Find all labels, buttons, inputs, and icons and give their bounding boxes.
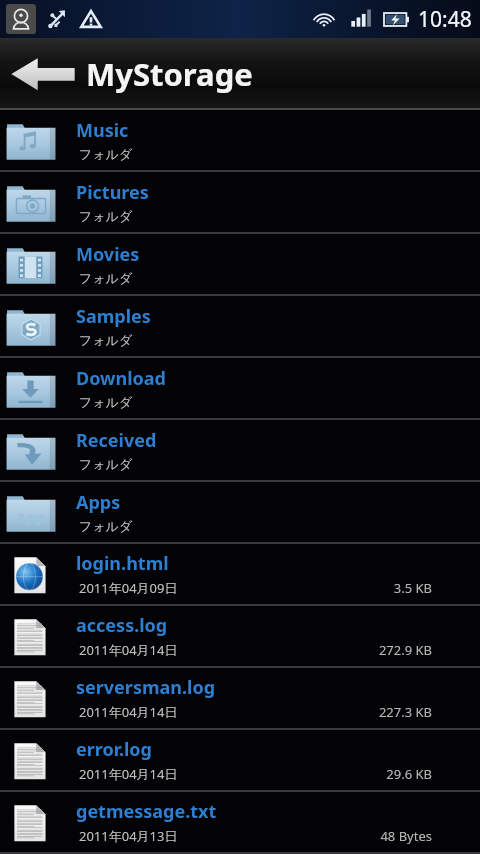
staticText: 2011年04月14日 (79, 641, 178, 659)
staticText: App (16, 507, 46, 527)
staticText: error.log (76, 737, 152, 762)
staticText: フォルダ (79, 270, 133, 286)
staticText: 10:48 (418, 5, 472, 34)
staticText: Download (76, 366, 166, 391)
button[interactable]: Music (0, 110, 480, 172)
button[interactable]: getmessage.txt (0, 792, 480, 854)
button[interactable]: error.log (0, 730, 480, 792)
staticText: Movies (76, 242, 140, 267)
staticText: Music (76, 118, 129, 143)
button[interactable]: Received (0, 420, 480, 482)
button[interactable]: Samples (0, 296, 480, 358)
button[interactable]: Movies (0, 234, 480, 296)
staticText: フォルダ (79, 332, 133, 348)
staticText: フォルダ (79, 394, 133, 410)
button[interactable]: serversman.log (0, 668, 480, 730)
button[interactable]: login.html (0, 544, 480, 606)
button[interactable]: Pictures (0, 172, 480, 234)
staticText: MyStorage (86, 53, 253, 95)
staticText: フォルダ (79, 146, 133, 162)
staticText: 3.5 KB (393, 579, 432, 597)
staticText: serversman.log (76, 675, 216, 700)
staticText: 29.6 KB (386, 765, 432, 783)
staticText: Received (76, 428, 157, 453)
staticText: 2011年04月09日 (79, 579, 178, 597)
button[interactable]: App (0, 482, 480, 544)
staticText: 2011年04月14日 (79, 765, 178, 783)
staticText: 2011年04月13日 (79, 827, 178, 845)
staticText: フォルダ (79, 518, 133, 534)
staticText: access.log (76, 613, 168, 638)
button[interactable]: access.log (0, 606, 480, 668)
button[interactable]: Download (0, 358, 480, 420)
staticText: login.html (76, 551, 169, 576)
staticText: Samples (76, 304, 151, 329)
staticText: Apps (76, 490, 121, 515)
staticText: getmessage.txt (76, 799, 217, 824)
staticText: 227.3 KB (378, 703, 432, 721)
staticText: フォルダ (79, 456, 133, 472)
staticText: Pictures (76, 180, 149, 205)
staticText: 48 Bytes (380, 827, 432, 845)
button[interactable]: Back (0, 38, 86, 110)
staticText: 2011年04月14日 (79, 703, 178, 721)
staticText: フォルダ (79, 208, 133, 224)
staticText: 272.9 KB (378, 641, 432, 659)
